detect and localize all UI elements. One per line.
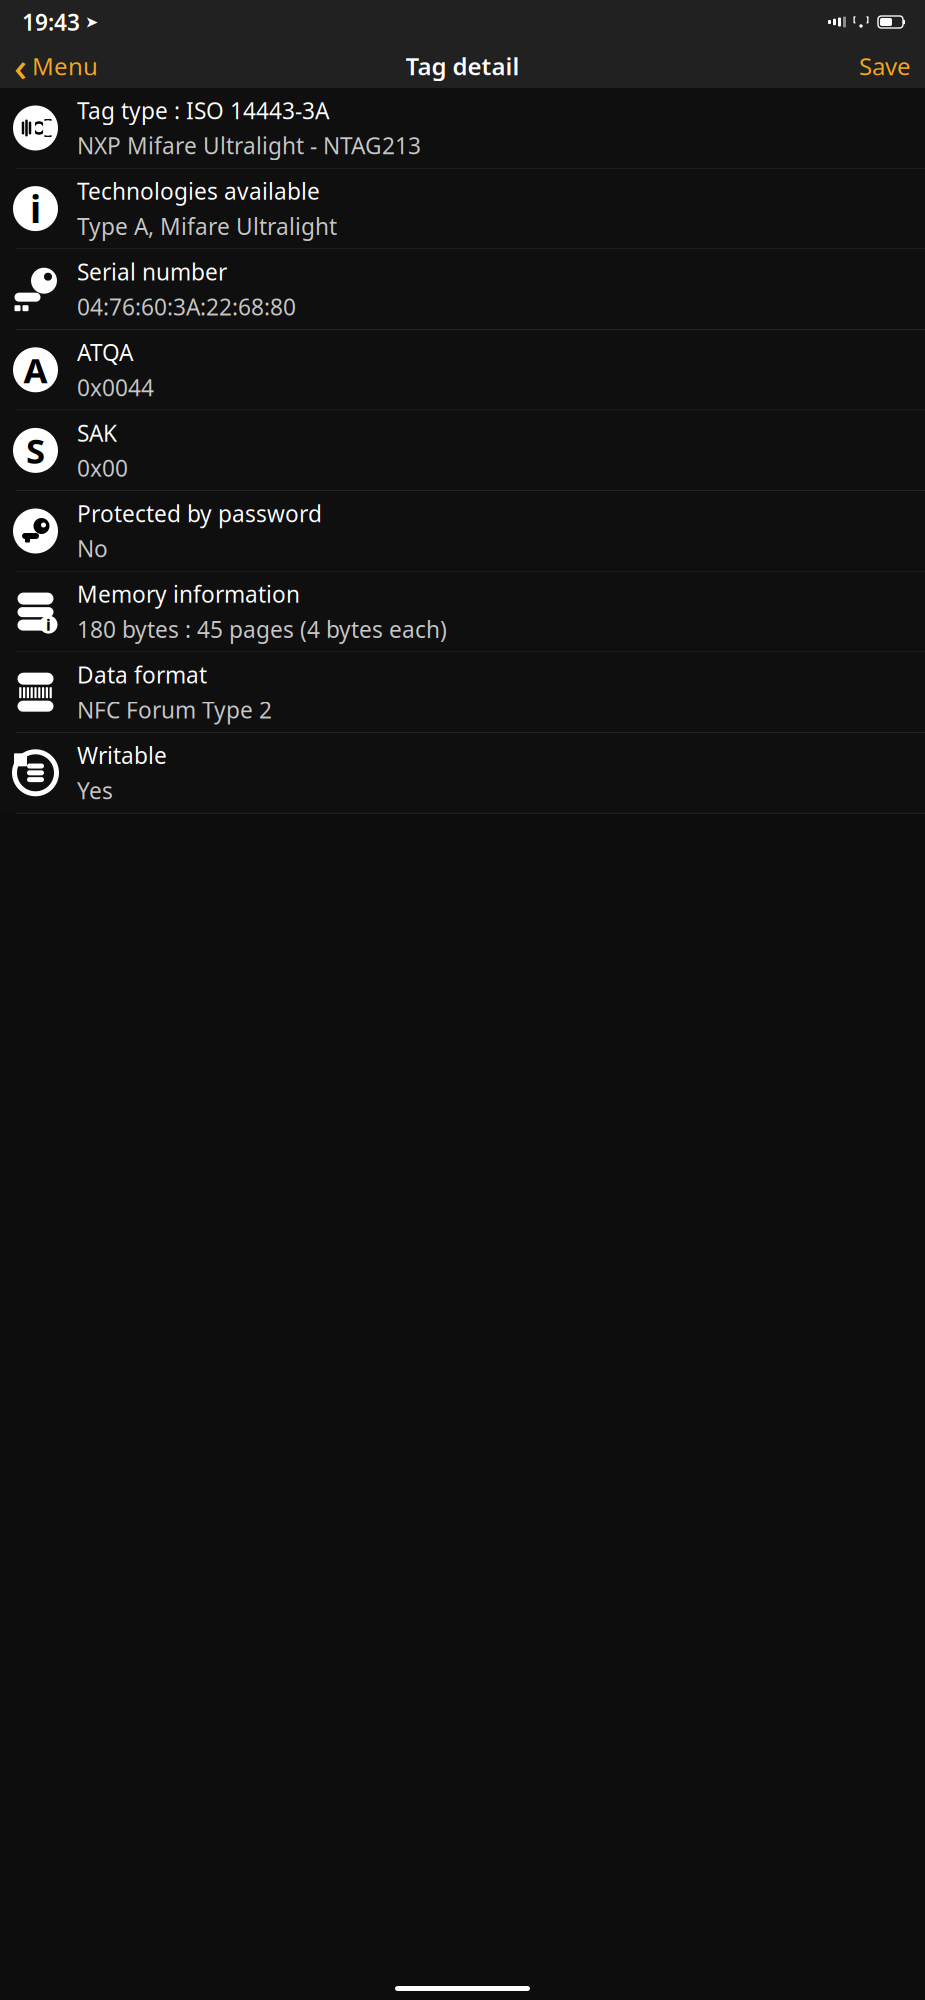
button[interactable]: Protected by password — [0, 491, 925, 572]
button[interactable]: Tag type : ISO 14443-3A — [0, 88, 925, 169]
staticText: Tag type : ISO 14443-3A — [77, 95, 329, 125]
staticText: Memory information — [77, 579, 300, 609]
staticText: NFC Forum Type 2 — [77, 695, 272, 725]
button[interactable]: ‹ — [0, 44, 108, 88]
staticText: Type A, Mifare Ultralight — [77, 211, 337, 241]
staticText: i — [46, 614, 51, 635]
button[interactable]: A — [0, 330, 925, 410]
staticText: ‹ — [14, 39, 27, 92]
button[interactable]: i — [0, 572, 925, 652]
staticText: Protected by password — [77, 498, 322, 528]
button[interactable]: i — [0, 169, 925, 249]
staticText: No — [77, 533, 108, 564]
button[interactable]: Data format — [0, 652, 925, 733]
staticText: Data format — [77, 660, 207, 690]
staticText: Writable — [77, 740, 167, 770]
staticText: NXP Mifare Ultralight - NTAG213 — [77, 130, 421, 161]
button[interactable]: Writable — [0, 733, 925, 813]
staticText: i — [30, 184, 41, 233]
staticText: Tag detail — [405, 50, 519, 82]
button[interactable]: Serial number — [0, 249, 925, 330]
staticText: ➤ — [85, 13, 98, 31]
staticText: A — [23, 347, 47, 393]
staticText: 04:76:60:3A:22:68:80 — [77, 292, 296, 322]
staticText: Technologies available — [77, 176, 320, 206]
button[interactable]: S — [0, 410, 925, 491]
staticText: Serial number — [77, 257, 227, 287]
staticText: 19:43 — [22, 7, 80, 37]
staticText: ATQA — [77, 337, 133, 367]
staticText: 0x0044 — [77, 372, 154, 402]
staticText: Save — [859, 50, 911, 82]
button[interactable]: Save — [845, 44, 925, 88]
staticText: SAK — [77, 418, 117, 448]
staticText: S — [26, 427, 45, 473]
staticText: Menu — [32, 50, 98, 82]
staticText: 180 bytes : 45 pages (4 bytes each) — [77, 614, 447, 644]
staticText: 0x00 — [77, 453, 128, 483]
staticText: Yes — [77, 775, 113, 805]
